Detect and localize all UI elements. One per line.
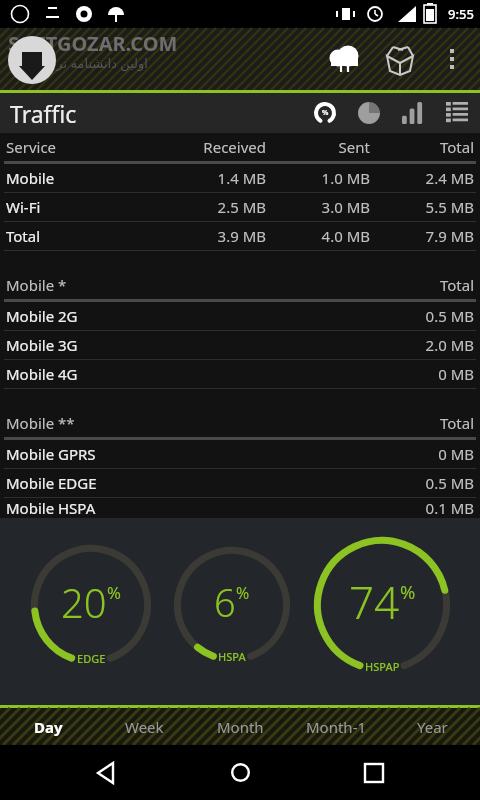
- staticText: 5.5 MB: [370, 197, 474, 217]
- staticText: Service: [6, 137, 162, 157]
- staticText: 2.4 MB: [370, 168, 474, 188]
- button[interactable]: Mobile 4G: [0, 360, 480, 389]
- staticText: Week: [125, 717, 164, 737]
- staticText: Mobile 3G: [6, 335, 287, 355]
- staticText: 0 MB: [287, 444, 474, 464]
- staticText: 0.5 MB: [287, 473, 474, 493]
- staticText: 4.0 MB: [266, 226, 370, 246]
- button[interactable]: Wi-Fi: [0, 193, 480, 222]
- staticText: Mobile EDGE: [6, 473, 287, 493]
- staticText: Month: [217, 717, 264, 737]
- staticText: اولین دانشنامه نرم افزار: [18, 54, 148, 72]
- staticText: Mobile GPRS: [6, 444, 287, 464]
- button[interactable]: Bar chart view: [396, 96, 430, 130]
- staticText: 0.5 MB: [287, 306, 474, 326]
- button[interactable]: Back: [78, 745, 134, 800]
- staticText: Mobile 2G: [6, 306, 287, 326]
- staticText: HSPA: [218, 649, 246, 664]
- button[interactable]: Cloud sync: [316, 31, 372, 87]
- button[interactable]: Pie chart view: [352, 96, 386, 130]
- staticText: Mobile 4G: [6, 364, 287, 384]
- staticText: 0.1 MB: [287, 498, 474, 518]
- staticText: %: [236, 582, 250, 604]
- staticText: Total: [287, 275, 474, 295]
- staticText: Traffic: [10, 98, 77, 129]
- button[interactable]: Year: [384, 708, 480, 745]
- staticText: %: [107, 581, 121, 604]
- button[interactable]: Mobile EDGE: [0, 469, 480, 498]
- staticText: Total: [370, 137, 474, 157]
- staticText: Sent: [266, 137, 370, 157]
- staticText: 7.9 MB: [370, 226, 474, 246]
- staticText: 3.9 MB: [162, 226, 266, 246]
- staticText: Received: [162, 137, 266, 157]
- button[interactable]: Home: [212, 745, 268, 800]
- button[interactable]: Mobile GPRS: [0, 440, 480, 469]
- button[interactable]: Month-1: [288, 708, 384, 745]
- staticText: Wi-Fi: [6, 197, 162, 217]
- button[interactable]: Mobile 2G: [0, 302, 480, 331]
- staticText: 9:55: [448, 5, 474, 23]
- staticText: 20: [61, 575, 107, 629]
- button[interactable]: Apps: [372, 31, 428, 87]
- staticText: 6: [214, 576, 236, 628]
- staticText: HSPAP: [365, 659, 400, 674]
- staticText: 74: [349, 572, 400, 632]
- staticText: 1.0 MB: [266, 168, 370, 188]
- staticText: 3.0 MB: [266, 197, 370, 217]
- button[interactable]: Total: [0, 222, 480, 251]
- staticText: Mobile: [6, 168, 162, 188]
- button[interactable]: Mobile: [0, 164, 480, 193]
- button[interactable]: More options: [428, 35, 476, 83]
- staticText: %: [322, 108, 329, 118]
- staticText: Mobile *: [6, 275, 287, 295]
- button[interactable]: Week: [96, 708, 192, 745]
- staticText: 2.0 MB: [287, 335, 474, 355]
- staticText: %: [400, 579, 416, 604]
- button[interactable]: Mobile **: [0, 409, 480, 440]
- staticText: Year: [417, 717, 448, 737]
- button[interactable]: Gauge view: [308, 96, 342, 130]
- button[interactable]: Mobile HSPA: [0, 498, 480, 518]
- staticText: Mobile HSPA: [6, 498, 287, 518]
- staticText: Day: [34, 717, 63, 737]
- staticText: EDGE: [77, 651, 106, 666]
- button[interactable]: Month: [192, 708, 288, 745]
- button[interactable]: Day: [0, 708, 96, 745]
- button[interactable]: List view: [440, 96, 474, 130]
- button[interactable]: Recent apps: [346, 745, 402, 800]
- staticText: Total: [6, 226, 162, 246]
- staticText: SOFTGOZAR.COM: [8, 30, 178, 57]
- button[interactable]: Mobile *: [0, 271, 480, 302]
- staticText: 0 MB: [287, 364, 474, 384]
- staticText: Month-1: [306, 717, 367, 737]
- staticText: 2.5 MB: [162, 197, 266, 217]
- staticText: Mobile **: [6, 413, 287, 433]
- staticText: Total: [287, 413, 474, 433]
- button[interactable]: Mobile 3G: [0, 331, 480, 360]
- button[interactable]: Service: [0, 133, 480, 164]
- staticText: 1.4 MB: [162, 168, 266, 188]
